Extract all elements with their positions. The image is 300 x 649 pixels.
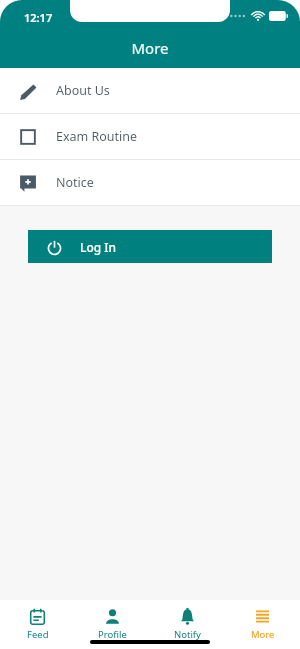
staticText: Profile bbox=[98, 628, 127, 641]
button[interactable]: Notify bbox=[150, 600, 225, 649]
staticText: More bbox=[131, 38, 169, 58]
staticText: About Us bbox=[56, 82, 110, 99]
button[interactable]: More bbox=[225, 600, 300, 649]
staticText: Notify bbox=[174, 628, 201, 641]
button[interactable]: About Us bbox=[0, 68, 300, 113]
button[interactable]: Notice bbox=[0, 160, 300, 205]
button[interactable]: Log In bbox=[28, 230, 272, 263]
staticText: Feed bbox=[27, 628, 49, 641]
button[interactable]: Profile bbox=[75, 600, 150, 649]
staticText: 12:17 bbox=[24, 10, 53, 25]
staticText: Log In bbox=[80, 239, 117, 255]
staticText: More bbox=[251, 628, 275, 641]
button[interactable]: Exam Routine bbox=[0, 114, 300, 159]
staticText: Exam Routine bbox=[56, 128, 138, 145]
staticText: Notice bbox=[56, 174, 94, 191]
button[interactable]: Feed bbox=[0, 600, 75, 649]
